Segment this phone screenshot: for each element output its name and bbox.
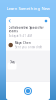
staticText: Collaborative Spaces for Teams [8,26,43,33]
button[interactable]: Back [6,18,14,24]
button[interactable]: More [42,18,50,24]
staticText: Okay! [9,60,14,68]
button[interactable]: Record [6,82,50,100]
staticText: Learn Something New [6,6,49,11]
staticText: Maya Chen [15,41,31,45]
staticText: Today at 9:41 AM [8,34,31,38]
staticText: Sent you a new draft [15,45,42,49]
